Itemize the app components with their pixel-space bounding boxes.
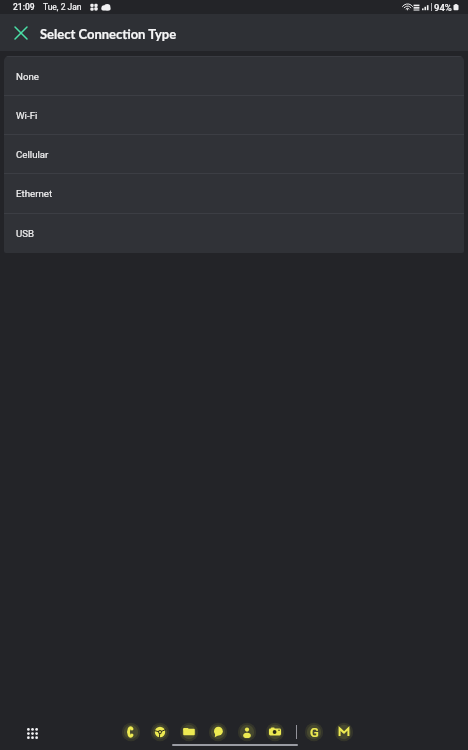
button[interactable]: None xyxy=(4,57,464,95)
staticText: Wi-Fi xyxy=(16,110,38,121)
button[interactable]: Camera xyxy=(262,719,288,745)
staticText: 94% xyxy=(434,2,452,13)
button[interactable]: Close xyxy=(6,18,36,48)
staticText: 21:09 xyxy=(13,2,35,12)
staticText: Select Connection Type xyxy=(40,26,177,42)
button[interactable]: Contacts xyxy=(234,719,260,745)
staticText: Ethernet xyxy=(16,188,53,199)
button[interactable]: All apps xyxy=(22,723,43,744)
button[interactable]: Messages xyxy=(205,719,231,745)
button[interactable]: Ethernet xyxy=(4,174,464,213)
button[interactable]: Chrome xyxy=(147,719,173,745)
button[interactable]: Cellular xyxy=(4,135,464,173)
button[interactable]: Wi-Fi xyxy=(4,96,464,134)
staticText: USB xyxy=(16,228,35,239)
button[interactable]: Phone xyxy=(118,719,144,745)
button[interactable]: Files xyxy=(176,719,202,745)
staticText: Cellular xyxy=(16,149,49,160)
staticText: None xyxy=(16,71,39,82)
staticText: Tue, 2 Jan xyxy=(43,2,82,12)
button[interactable]: Google xyxy=(301,719,327,745)
button[interactable]: Gmail xyxy=(331,719,357,745)
button[interactable]: USB xyxy=(4,214,464,253)
staticText: G xyxy=(310,725,319,740)
